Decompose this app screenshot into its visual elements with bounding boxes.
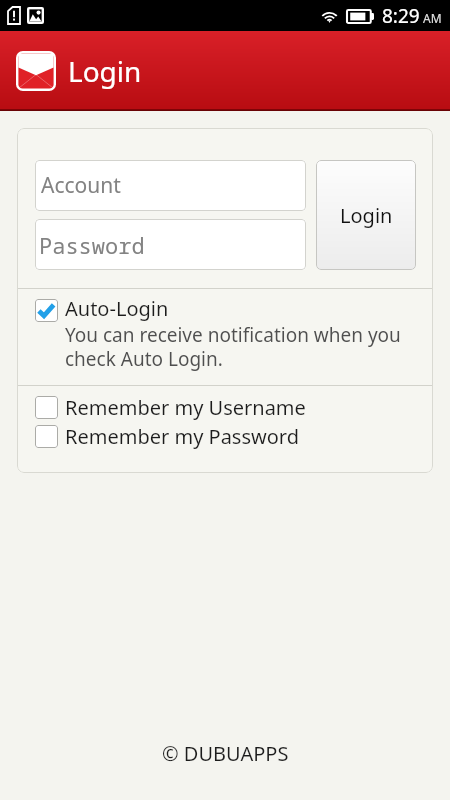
button[interactable]: Remember my Password bbox=[17, 422, 433, 451]
staticText: Account bbox=[41, 171, 121, 200]
button[interactable]: Remember my Username bbox=[17, 393, 433, 422]
staticText: Remember my Username bbox=[65, 394, 306, 421]
button[interactable]: Account bbox=[35, 160, 306, 211]
staticText: 8:29 bbox=[382, 3, 420, 29]
button[interactable]: App logo bbox=[16, 51, 56, 91]
staticText: © DUBUAPPS bbox=[162, 740, 289, 767]
staticText: Remember my Password bbox=[65, 423, 299, 450]
staticText: You can receive notification when you ch… bbox=[65, 322, 415, 371]
button[interactable]: Password bbox=[35, 219, 306, 270]
staticText: AM bbox=[423, 10, 442, 26]
staticText: Login bbox=[340, 202, 393, 229]
staticText: Password bbox=[39, 230, 145, 260]
button[interactable]: Login bbox=[316, 160, 416, 270]
button[interactable]: Auto-Login bbox=[17, 289, 433, 385]
staticText: Auto-Login bbox=[65, 295, 169, 322]
staticText: Login bbox=[68, 52, 142, 90]
